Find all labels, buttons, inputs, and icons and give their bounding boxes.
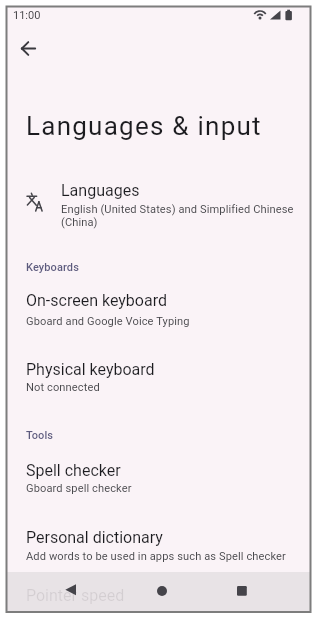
staticText: Pointer speed <box>26 586 125 605</box>
button[interactable] <box>57 577 83 603</box>
button[interactable] <box>7 450 311 510</box>
staticText: Spell checker <box>26 461 121 480</box>
button[interactable] <box>7 174 311 230</box>
staticText: Keyboards <box>26 261 79 274</box>
button[interactable] <box>149 578 175 604</box>
staticText: Not connected <box>26 381 100 394</box>
staticText: Tools <box>26 429 54 442</box>
staticText: Add words to be used in apps such as Spe… <box>26 550 286 563</box>
button[interactable] <box>11 31 45 65</box>
staticText: 11:00 <box>13 9 41 22</box>
staticText: Physical keyboard <box>26 360 155 379</box>
staticText: Personal dictionary <box>26 528 163 547</box>
staticText: Gboard and Google Voice Typing <box>26 315 190 328</box>
staticText: Languages <box>61 181 140 200</box>
staticText: English (United States) and Simplified C… <box>61 203 294 228</box>
staticText: Gboard spell checker <box>26 482 132 495</box>
staticText: On-screen keyboard <box>26 291 167 310</box>
button[interactable] <box>7 518 311 574</box>
button[interactable] <box>229 578 255 604</box>
button[interactable] <box>7 348 311 408</box>
staticText: Languages & input <box>26 111 262 141</box>
button[interactable] <box>7 280 311 340</box>
